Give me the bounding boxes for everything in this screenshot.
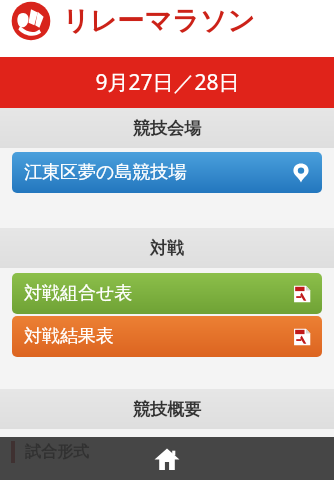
- staticText: 江東区夢の島競技場: [24, 161, 187, 184]
- staticText: 競技概要: [133, 399, 201, 420]
- staticText: 試合形式: [25, 442, 89, 462]
- button[interactable]: 対戦組合せ表 PDF: [12, 273, 322, 314]
- button[interactable]: 対戦結果表 PDF: [12, 316, 322, 357]
- staticText: 対戦: [150, 238, 184, 259]
- staticText: 9月27日／28日: [95, 68, 240, 97]
- staticText: 対戦組合せ表: [24, 282, 133, 305]
- button[interactable]: 江東区夢の島競技場 Map: [12, 152, 322, 193]
- staticText: 対戦結果表: [24, 325, 114, 348]
- button[interactable]: Home: [0, 437, 334, 480]
- staticText: リレーマラソン: [62, 4, 255, 38]
- staticText: 競技会場: [133, 118, 201, 139]
